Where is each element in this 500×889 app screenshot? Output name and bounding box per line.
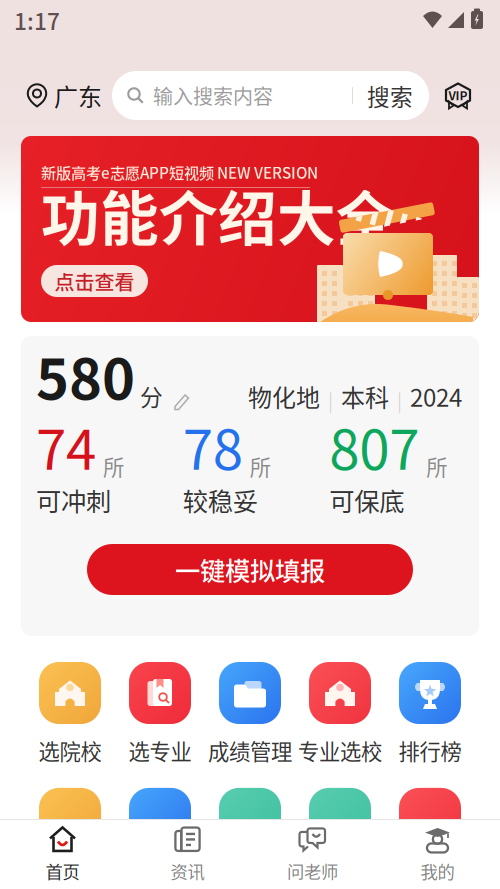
staticText: 选专业 — [128, 735, 191, 766]
staticText: 首页 — [45, 858, 79, 884]
staticText: 可冲刺 — [36, 482, 111, 518]
button[interactable]: 选专业 — [115, 662, 205, 766]
button[interactable]: 我的 — [375, 815, 500, 889]
staticText: 580 — [36, 334, 135, 416]
staticText: 排行榜 — [398, 735, 461, 766]
staticText: 一键模拟填报 — [175, 551, 325, 588]
staticText: 所 — [250, 451, 271, 482]
staticText: 点击查看 — [54, 266, 134, 295]
staticText: VIP — [448, 86, 467, 104]
staticText: 成绩管理 — [208, 735, 292, 766]
button[interactable]: 新版高考e志愿APP短视频 NEW VERSION — [21, 136, 479, 322]
staticText: 74 — [36, 406, 96, 486]
staticText: 分 — [140, 380, 163, 412]
button[interactable]: 78 — [183, 424, 329, 513]
staticText: 2024 — [410, 379, 462, 414]
staticText: 选院校 — [38, 735, 101, 766]
button[interactable]: 功能 — [205, 788, 295, 850]
button[interactable]: 物化地 — [248, 379, 462, 416]
button[interactable]: 专业选校 — [295, 662, 385, 766]
staticText: 物化地 — [248, 379, 320, 414]
staticText: 功能介绍大全 — [41, 172, 395, 257]
button[interactable]: 问老师 — [250, 815, 375, 889]
staticText: 广东 — [54, 78, 102, 113]
staticText: 本科 — [341, 379, 389, 414]
button[interactable]: 807 — [329, 424, 476, 513]
button[interactable]: 功能 — [385, 788, 475, 850]
button[interactable]: 首页 — [0, 815, 125, 889]
staticText: 问老师 — [287, 858, 338, 884]
button[interactable]: 功能 — [115, 788, 205, 850]
staticText: 78 — [183, 406, 243, 486]
staticText: 输入搜索内容 — [153, 81, 273, 110]
staticText: 新版高考e志愿APP短视频 NEW VERSION — [41, 161, 318, 183]
button[interactable]: 输入搜索内容 — [112, 71, 429, 120]
staticText: 可保底 — [329, 482, 404, 518]
button[interactable]: 功能 — [25, 788, 115, 850]
button[interactable]: 选院校 — [25, 662, 115, 766]
button[interactable]: 资讯 — [125, 815, 250, 889]
staticText: 专业选校 — [298, 735, 382, 766]
staticText: 资讯 — [170, 858, 204, 884]
staticText: | — [328, 386, 333, 413]
staticText: 较稳妥 — [183, 482, 258, 518]
staticText: 搜索 — [367, 79, 413, 112]
staticText: 所 — [426, 451, 447, 482]
button[interactable]: 排行榜 — [385, 662, 475, 766]
button[interactable]: 74 — [36, 424, 183, 513]
staticText: 我的 — [420, 858, 454, 884]
button[interactable]: 功能 — [295, 788, 385, 850]
button[interactable]: 成绩管理 — [205, 662, 295, 766]
staticText: | — [397, 386, 402, 413]
staticText: 1:17 — [14, 4, 60, 36]
button[interactable]: VIP — [429, 80, 474, 110]
staticText: 所 — [103, 451, 124, 482]
staticText: 807 — [329, 406, 419, 486]
button[interactable]: 广东 — [0, 71, 112, 120]
button[interactable]: 一键模拟填报 — [87, 544, 413, 595]
button[interactable]: 580 — [36, 334, 191, 416]
